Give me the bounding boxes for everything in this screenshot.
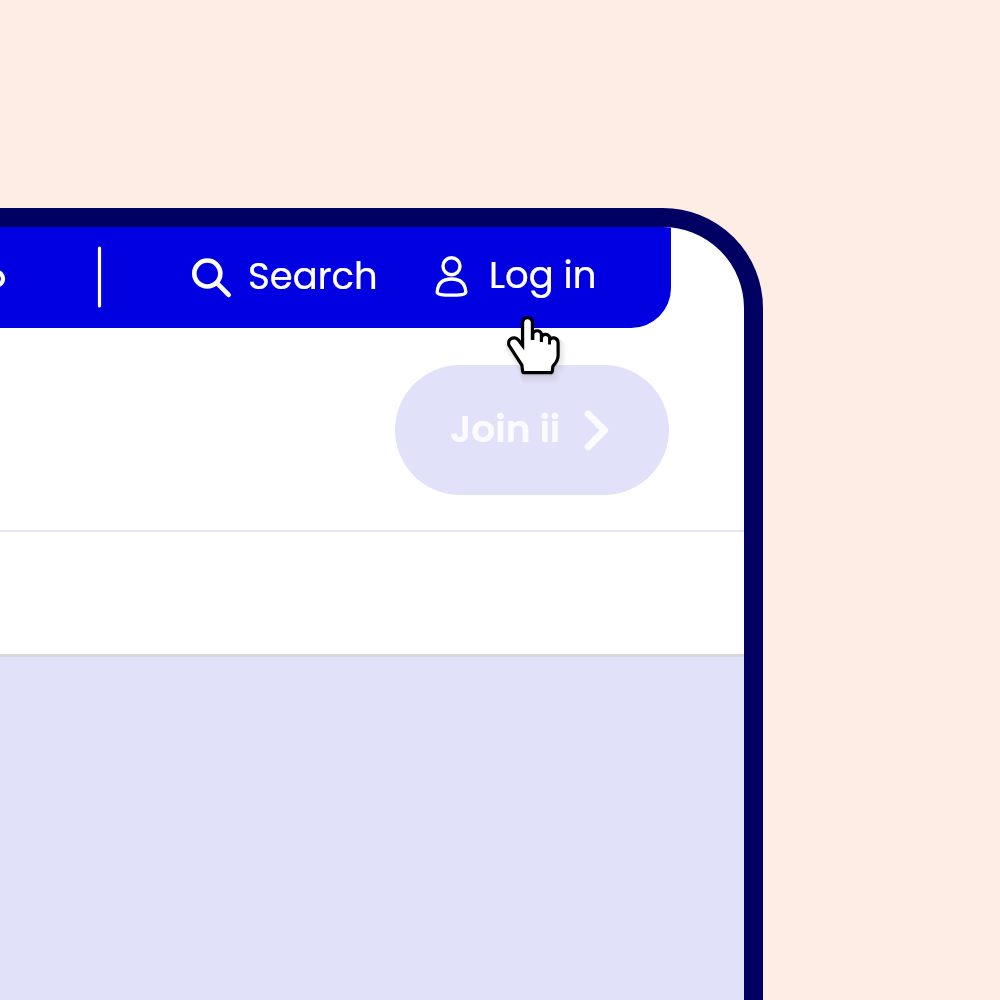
button[interactable] — [430, 240, 602, 316]
button[interactable]: Home — [0, 240, 12, 316]
button[interactable] — [186, 240, 382, 316]
button[interactable] — [395, 365, 669, 495]
